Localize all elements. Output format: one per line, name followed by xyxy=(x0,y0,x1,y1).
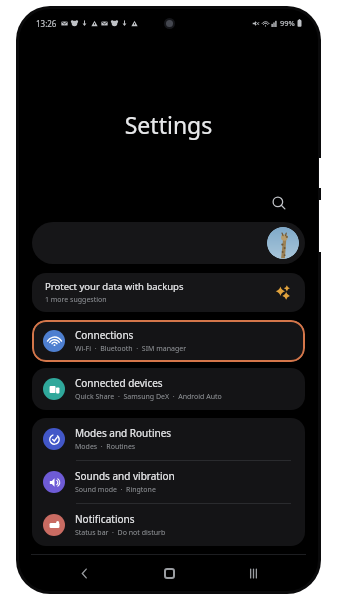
staticText: Connections xyxy=(75,328,134,342)
staticText: Sound mode · Ringtone xyxy=(75,485,156,495)
button[interactable]: Notifications xyxy=(32,504,305,546)
button[interactable]: Profile xyxy=(267,227,299,259)
staticText: Modes · Routines xyxy=(75,442,136,452)
button[interactable]: Search xyxy=(264,188,294,218)
staticText: Settings xyxy=(19,109,318,140)
button[interactable]: Modes and Routines xyxy=(32,418,305,460)
button[interactable]: Protect your data with backups xyxy=(32,273,305,312)
staticText: Protect your data with backups xyxy=(45,280,184,293)
staticText: Connected devices xyxy=(75,376,163,390)
staticText: Quick Share · Samsung DeX · Android Auto xyxy=(75,392,222,402)
staticText: Sounds and vibration xyxy=(75,469,175,483)
button[interactable]: Recents xyxy=(233,555,273,591)
staticText: Status bar · Do not disturb xyxy=(75,528,166,538)
staticText: 1 more suggestion xyxy=(45,295,107,305)
button[interactable]: Back xyxy=(64,555,104,591)
staticText: 13:26 xyxy=(36,18,57,29)
staticText: Notifications xyxy=(75,512,135,526)
staticText: Modes and Routines xyxy=(75,426,172,440)
button[interactable]: Connected devices xyxy=(32,368,305,410)
button[interactable]: Sounds and vibration xyxy=(32,461,305,503)
button[interactable]: Home xyxy=(149,555,189,591)
staticText: 99% xyxy=(280,18,295,28)
staticText: Wi-Fi · Bluetooth · SIM manager xyxy=(75,344,187,354)
button[interactable]: Connections xyxy=(32,320,305,362)
button[interactable]: Profile xyxy=(32,222,305,264)
